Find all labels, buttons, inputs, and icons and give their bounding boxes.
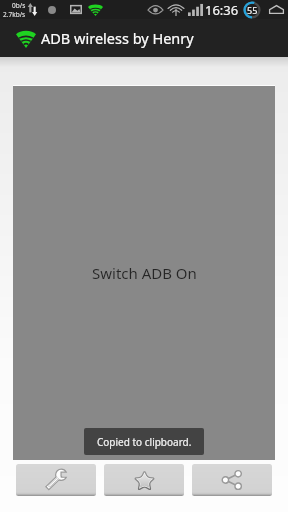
staticText: 16:36 [205, 1, 239, 19]
staticText: Switch ADB On [92, 263, 197, 283]
button[interactable]: Switch ADB On [13, 86, 275, 460]
button[interactable]: Favorite [104, 464, 184, 496]
staticText: 55 [247, 4, 258, 16]
button[interactable]: Share [192, 464, 272, 496]
staticText: 0b/s [12, 1, 26, 10]
button[interactable]: Settings [16, 464, 96, 496]
staticText: Copied to clipboard. [97, 435, 192, 449]
staticText: 2.7kb/s [3, 10, 26, 19]
staticText: ADB wireless by Henry [41, 28, 194, 48]
